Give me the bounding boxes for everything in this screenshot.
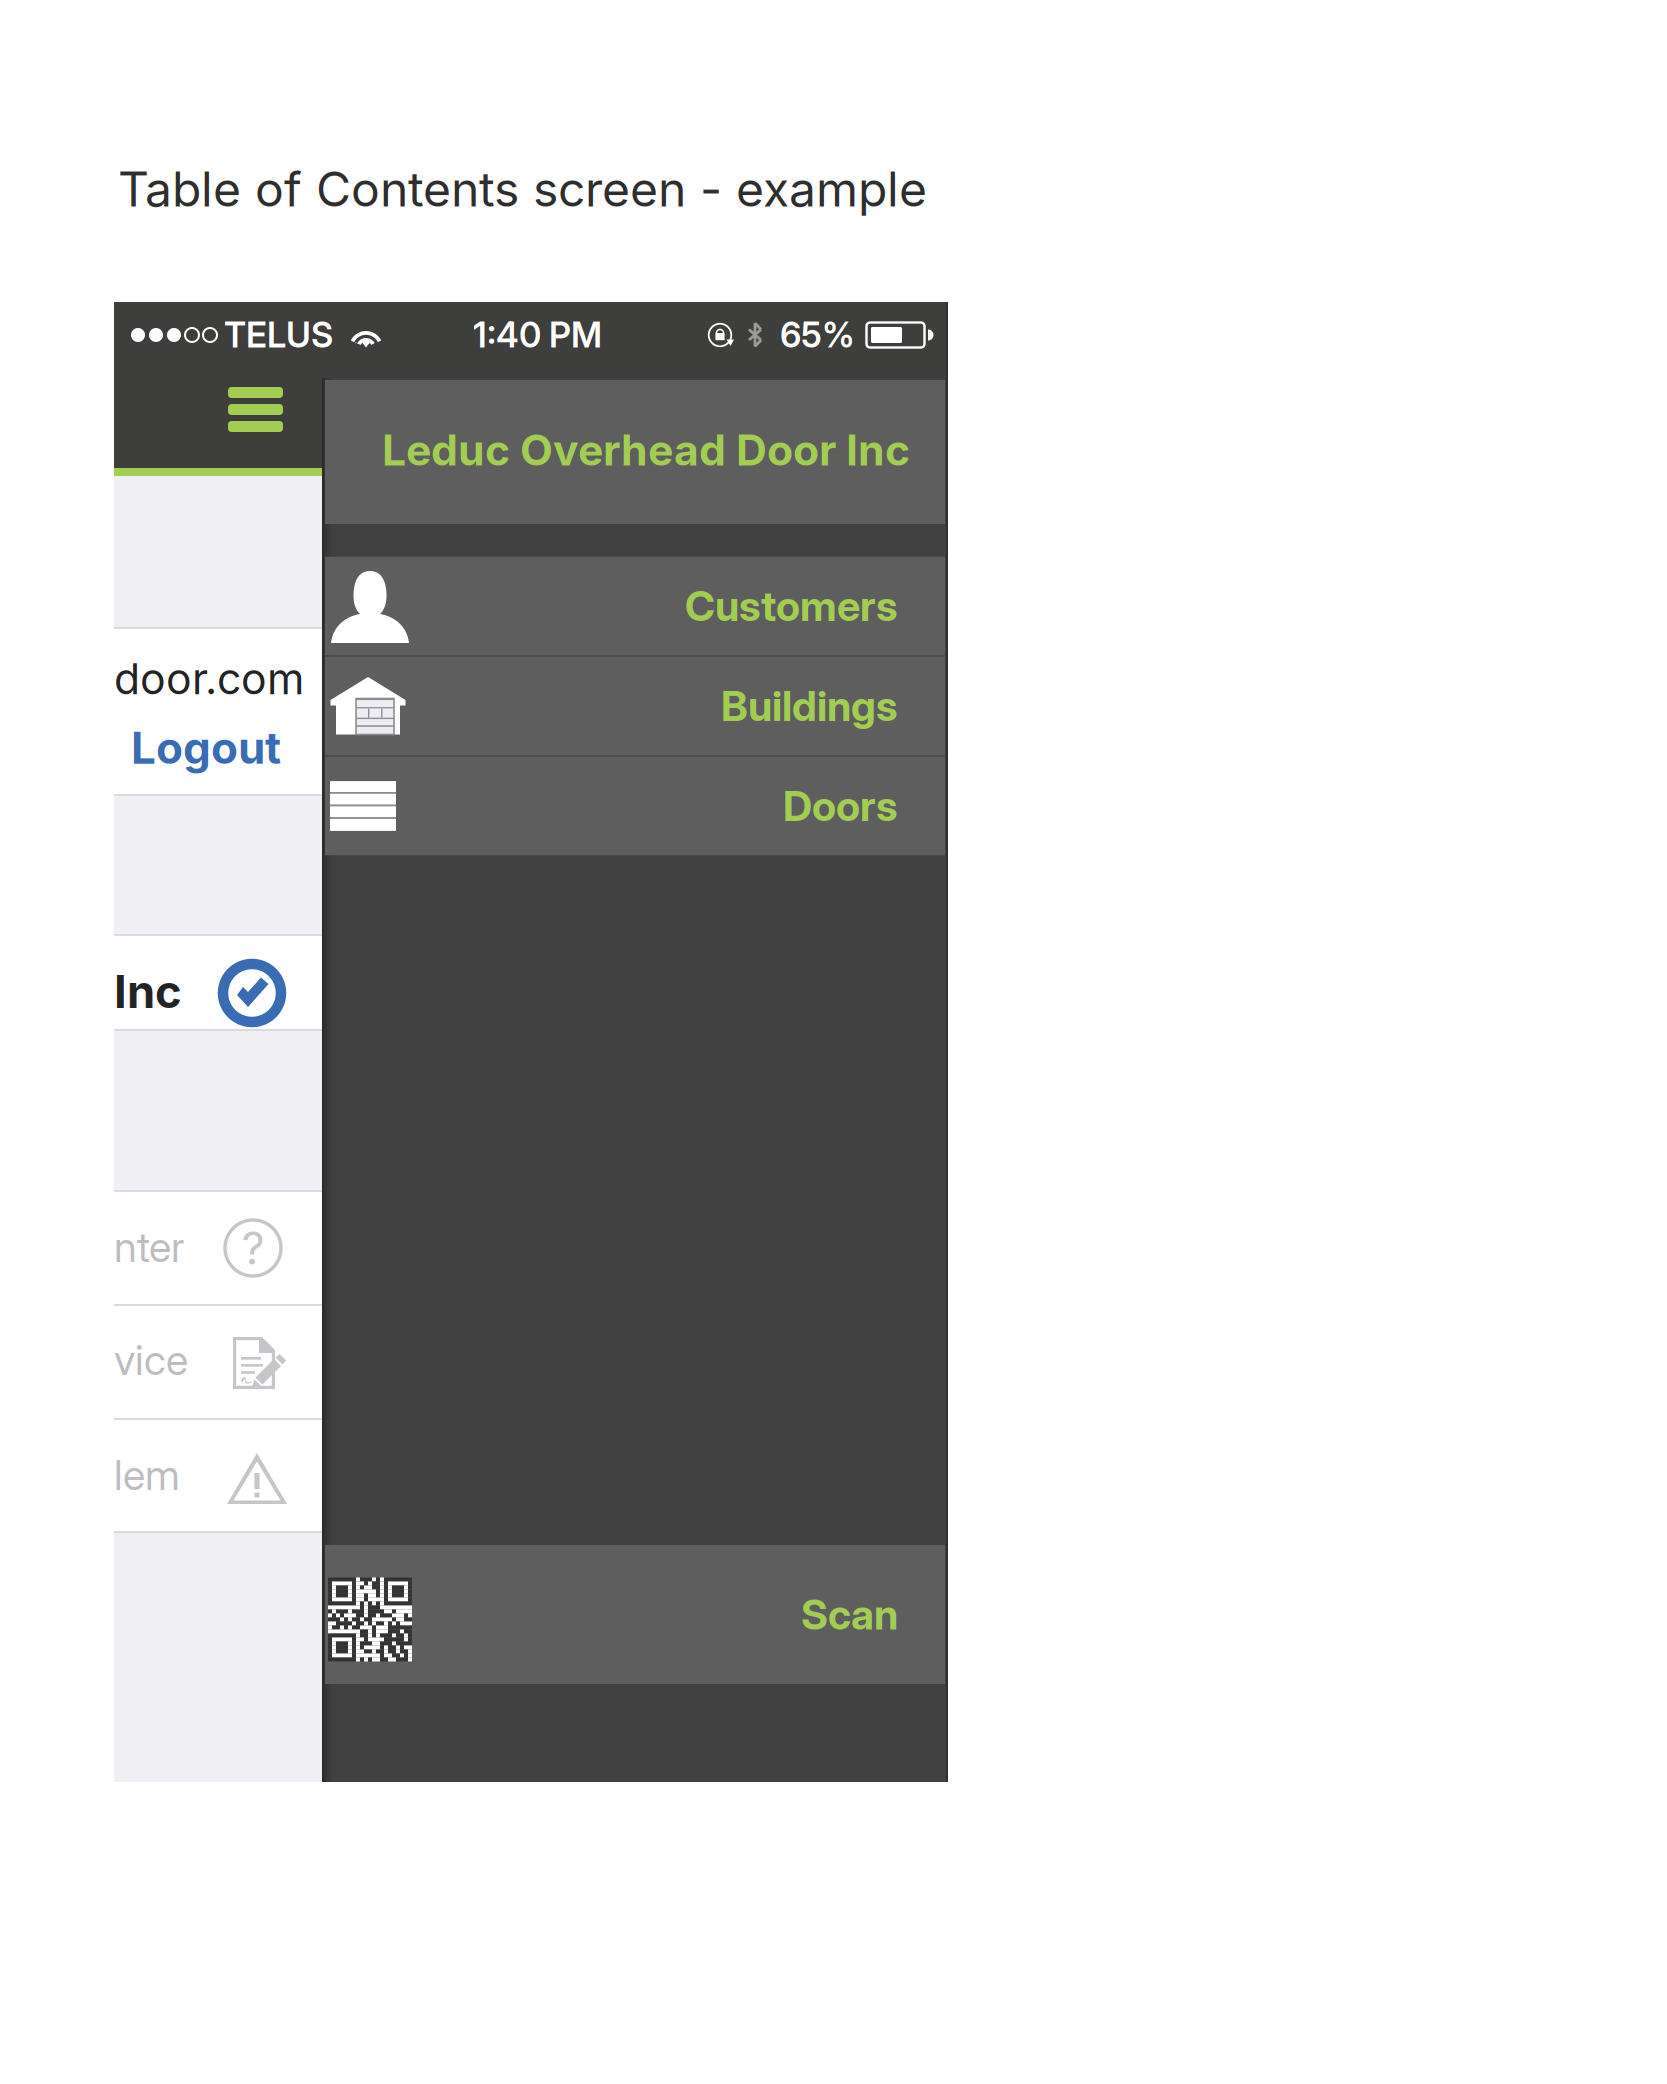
staticText: door.com: [114, 653, 304, 705]
button[interactable]: Customers: [325, 557, 945, 655]
button[interactable]: lem: [114, 1420, 322, 1531]
button[interactable]: vice: [114, 1306, 322, 1418]
staticText: Inc: [114, 964, 182, 1019]
button[interactable]: Open menu: [228, 387, 283, 432]
button[interactable]: door.com: [114, 629, 322, 794]
staticText: lem: [114, 1450, 180, 1500]
staticText: Doors: [783, 781, 898, 831]
staticText: Leduc Overhead Door Inc: [382, 424, 910, 476]
button[interactable]: Inc: [114, 936, 322, 1029]
staticText: ?: [241, 1221, 264, 1275]
staticText: Table of Contents screen - example: [118, 160, 927, 218]
staticText: Customers: [685, 581, 898, 631]
staticText: Buildings: [721, 681, 898, 731]
button[interactable]: Scan: [325, 1545, 945, 1684]
staticText: nter: [114, 1222, 184, 1272]
button[interactable]: Leduc Overhead Door Inc: [325, 380, 945, 524]
staticText: TELUS: [224, 314, 333, 356]
staticText: Logout: [131, 721, 281, 774]
staticText: 1:40 PM: [473, 314, 602, 356]
staticText: Scan: [801, 1589, 898, 1639]
staticText: vice: [114, 1335, 188, 1385]
button[interactable]: Doors: [325, 757, 945, 855]
button[interactable]: nter: [114, 1192, 322, 1304]
button[interactable]: Buildings: [325, 657, 945, 755]
staticText: 65%: [780, 314, 855, 356]
